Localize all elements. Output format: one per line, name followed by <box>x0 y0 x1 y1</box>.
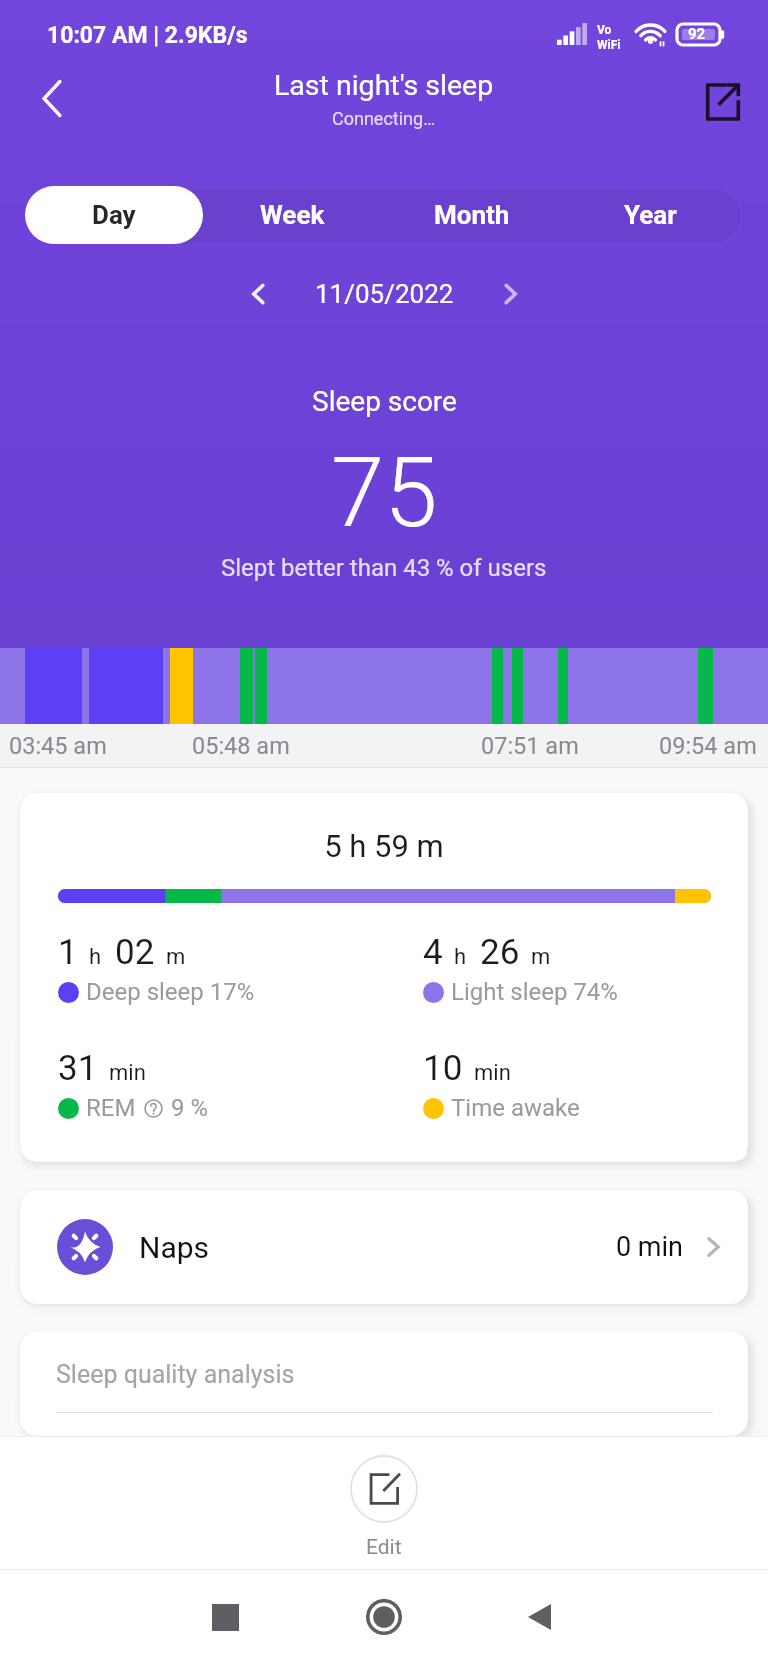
staticText: m <box>166 944 186 970</box>
staticText: 07:51 am <box>481 732 579 760</box>
staticText: 09:54 am <box>659 732 757 760</box>
staticText: 4 <box>423 932 443 973</box>
button[interactable]: Share <box>695 74 751 130</box>
staticText: 9 % <box>171 1094 209 1122</box>
staticText: 10:07 AM | 2.9KB/s <box>47 22 248 49</box>
staticText: Edit <box>366 1535 402 1560</box>
button[interactable]: Month <box>382 186 561 244</box>
button[interactable]: Back <box>484 1570 594 1664</box>
staticText: Time awake <box>451 1094 580 1122</box>
staticText: Sleep quality analysis <box>56 1360 295 1389</box>
staticText: Deep sleep 17% <box>86 978 255 1006</box>
staticText: 10 <box>423 1048 463 1089</box>
button[interactable]: Year <box>561 186 740 244</box>
staticText: 92 <box>688 25 706 43</box>
staticText: WiFi <box>597 38 621 52</box>
staticText: Last night's sleep <box>274 69 494 102</box>
staticText: min <box>474 1060 511 1086</box>
staticText: 05:48 am <box>192 732 290 760</box>
staticText: h <box>454 944 467 970</box>
button[interactable]: Previous day <box>233 268 285 320</box>
staticText: h <box>89 944 102 970</box>
button[interactable]: Home <box>329 1570 439 1664</box>
staticText: 0 min <box>616 1231 684 1263</box>
button[interactable]: Week <box>203 186 382 244</box>
staticText: min <box>109 1060 146 1086</box>
staticText: Naps <box>139 1230 210 1265</box>
staticText: Connecting… <box>332 108 436 129</box>
button[interactable]: Recents <box>170 1570 280 1664</box>
staticText: 1 <box>58 932 78 973</box>
staticText: Sleep score <box>312 385 457 418</box>
staticText: Slept better than 43 % of users <box>221 554 547 582</box>
button[interactable]: Back <box>24 70 80 126</box>
staticText: m <box>531 944 551 970</box>
staticText: Month <box>434 200 510 230</box>
button[interactable]: Edit <box>0 1437 768 1569</box>
staticText: 26 <box>480 932 520 973</box>
button[interactable]: Day <box>25 186 203 244</box>
staticText: 75 <box>331 437 438 550</box>
staticText: Week <box>260 200 325 230</box>
staticText: 31 <box>58 1048 98 1089</box>
staticText: Light sleep 74% <box>451 978 618 1006</box>
staticText: Day <box>92 200 136 230</box>
staticText: Year <box>624 200 677 230</box>
button[interactable]: Next day <box>484 268 536 320</box>
staticText: 5 h 59 m <box>20 828 748 864</box>
staticText: Vo <box>597 23 612 37</box>
staticText: REM <box>86 1094 136 1122</box>
staticText: 11/05/2022 <box>315 279 454 309</box>
button[interactable]: Naps <box>20 1190 748 1304</box>
staticText: 03:45 am <box>9 732 107 760</box>
staticText: 02 <box>115 932 155 973</box>
